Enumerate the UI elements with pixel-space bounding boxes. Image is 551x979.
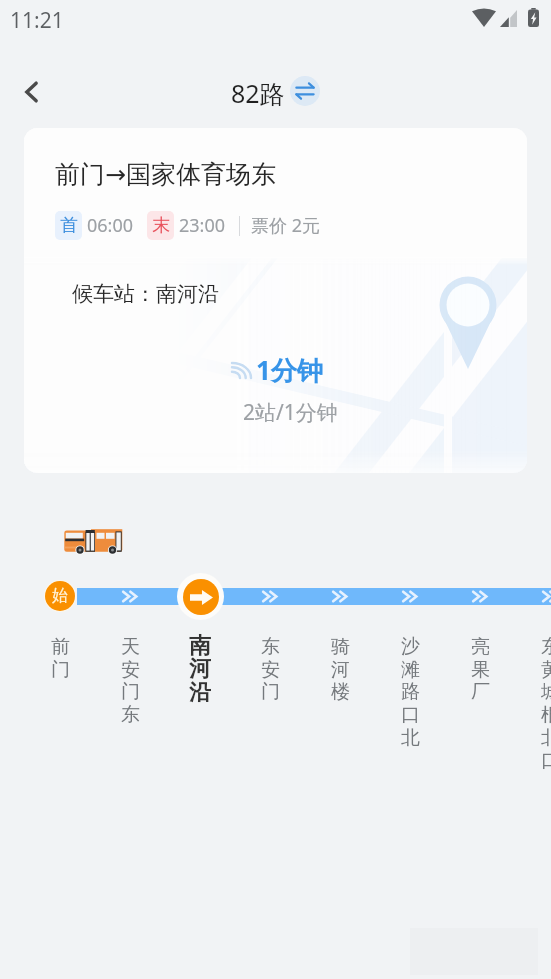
staticText: 沿 bbox=[189, 679, 211, 706]
button[interactable]: Switch direction bbox=[290, 76, 320, 106]
staticText: 口 bbox=[401, 703, 420, 727]
button[interactable]: 前 bbox=[25, 635, 95, 686]
staticText: 河 bbox=[331, 658, 350, 682]
staticText: 北 bbox=[401, 726, 420, 750]
staticText: 23:00 bbox=[179, 213, 226, 238]
staticText: 安 bbox=[261, 658, 280, 682]
staticText: 06:00 bbox=[87, 213, 134, 238]
staticText: 根 bbox=[541, 703, 551, 727]
staticText: 路 bbox=[401, 680, 420, 704]
button[interactable]: 亮 bbox=[445, 635, 515, 709]
staticText: 门 bbox=[121, 680, 140, 704]
staticText: 果 bbox=[471, 658, 490, 682]
staticText: 滩 bbox=[401, 658, 420, 682]
staticText: 北 bbox=[541, 726, 551, 750]
staticText: 黄 bbox=[541, 658, 551, 682]
button[interactable]: 东 bbox=[235, 635, 305, 709]
staticText: 安 bbox=[121, 658, 140, 682]
button[interactable]: 东 bbox=[515, 635, 551, 777]
staticText: 票价 2元 bbox=[251, 213, 320, 238]
staticText: 末 bbox=[152, 214, 170, 237]
staticText: 东 bbox=[121, 703, 140, 727]
staticText: 骑 bbox=[331, 635, 350, 659]
staticText: 2站/1分钟 bbox=[243, 398, 338, 427]
staticText: 城 bbox=[541, 680, 551, 704]
staticText: 亮 bbox=[471, 635, 490, 659]
staticText: 门 bbox=[51, 658, 70, 682]
staticText: 厂 bbox=[471, 680, 490, 704]
staticText: 始 bbox=[52, 586, 68, 606]
staticText: 天 bbox=[121, 635, 140, 659]
staticText: 南 bbox=[189, 632, 211, 659]
staticText: 河 bbox=[189, 655, 211, 682]
staticText: 82路 bbox=[231, 76, 285, 110]
staticText: 1分钟 bbox=[256, 352, 323, 388]
button[interactable]: Back bbox=[8, 68, 56, 116]
staticText: 首 bbox=[60, 214, 78, 237]
staticText: 前门→国家体育场东 bbox=[55, 159, 276, 190]
staticText: 11:21 bbox=[10, 6, 64, 35]
button[interactable]: 前门→国家体育场东 bbox=[24, 128, 527, 473]
button[interactable]: Start station bbox=[45, 581, 75, 611]
staticText: 沙 bbox=[401, 635, 420, 659]
button[interactable]: 南 bbox=[165, 632, 235, 708]
staticText: 楼 bbox=[331, 680, 350, 704]
button[interactable]: 天 bbox=[95, 635, 165, 732]
staticText: 前 bbox=[51, 635, 70, 659]
staticText: 门 bbox=[261, 680, 280, 704]
staticText: 口 bbox=[541, 749, 551, 773]
button[interactable]: 骑 bbox=[305, 635, 375, 709]
button[interactable]: 沙 bbox=[375, 635, 445, 755]
staticText: 候车站：南河沿 bbox=[72, 281, 219, 307]
button[interactable]: Current station bbox=[183, 579, 219, 615]
staticText: 东 bbox=[541, 635, 551, 659]
staticText: 东 bbox=[261, 635, 280, 659]
